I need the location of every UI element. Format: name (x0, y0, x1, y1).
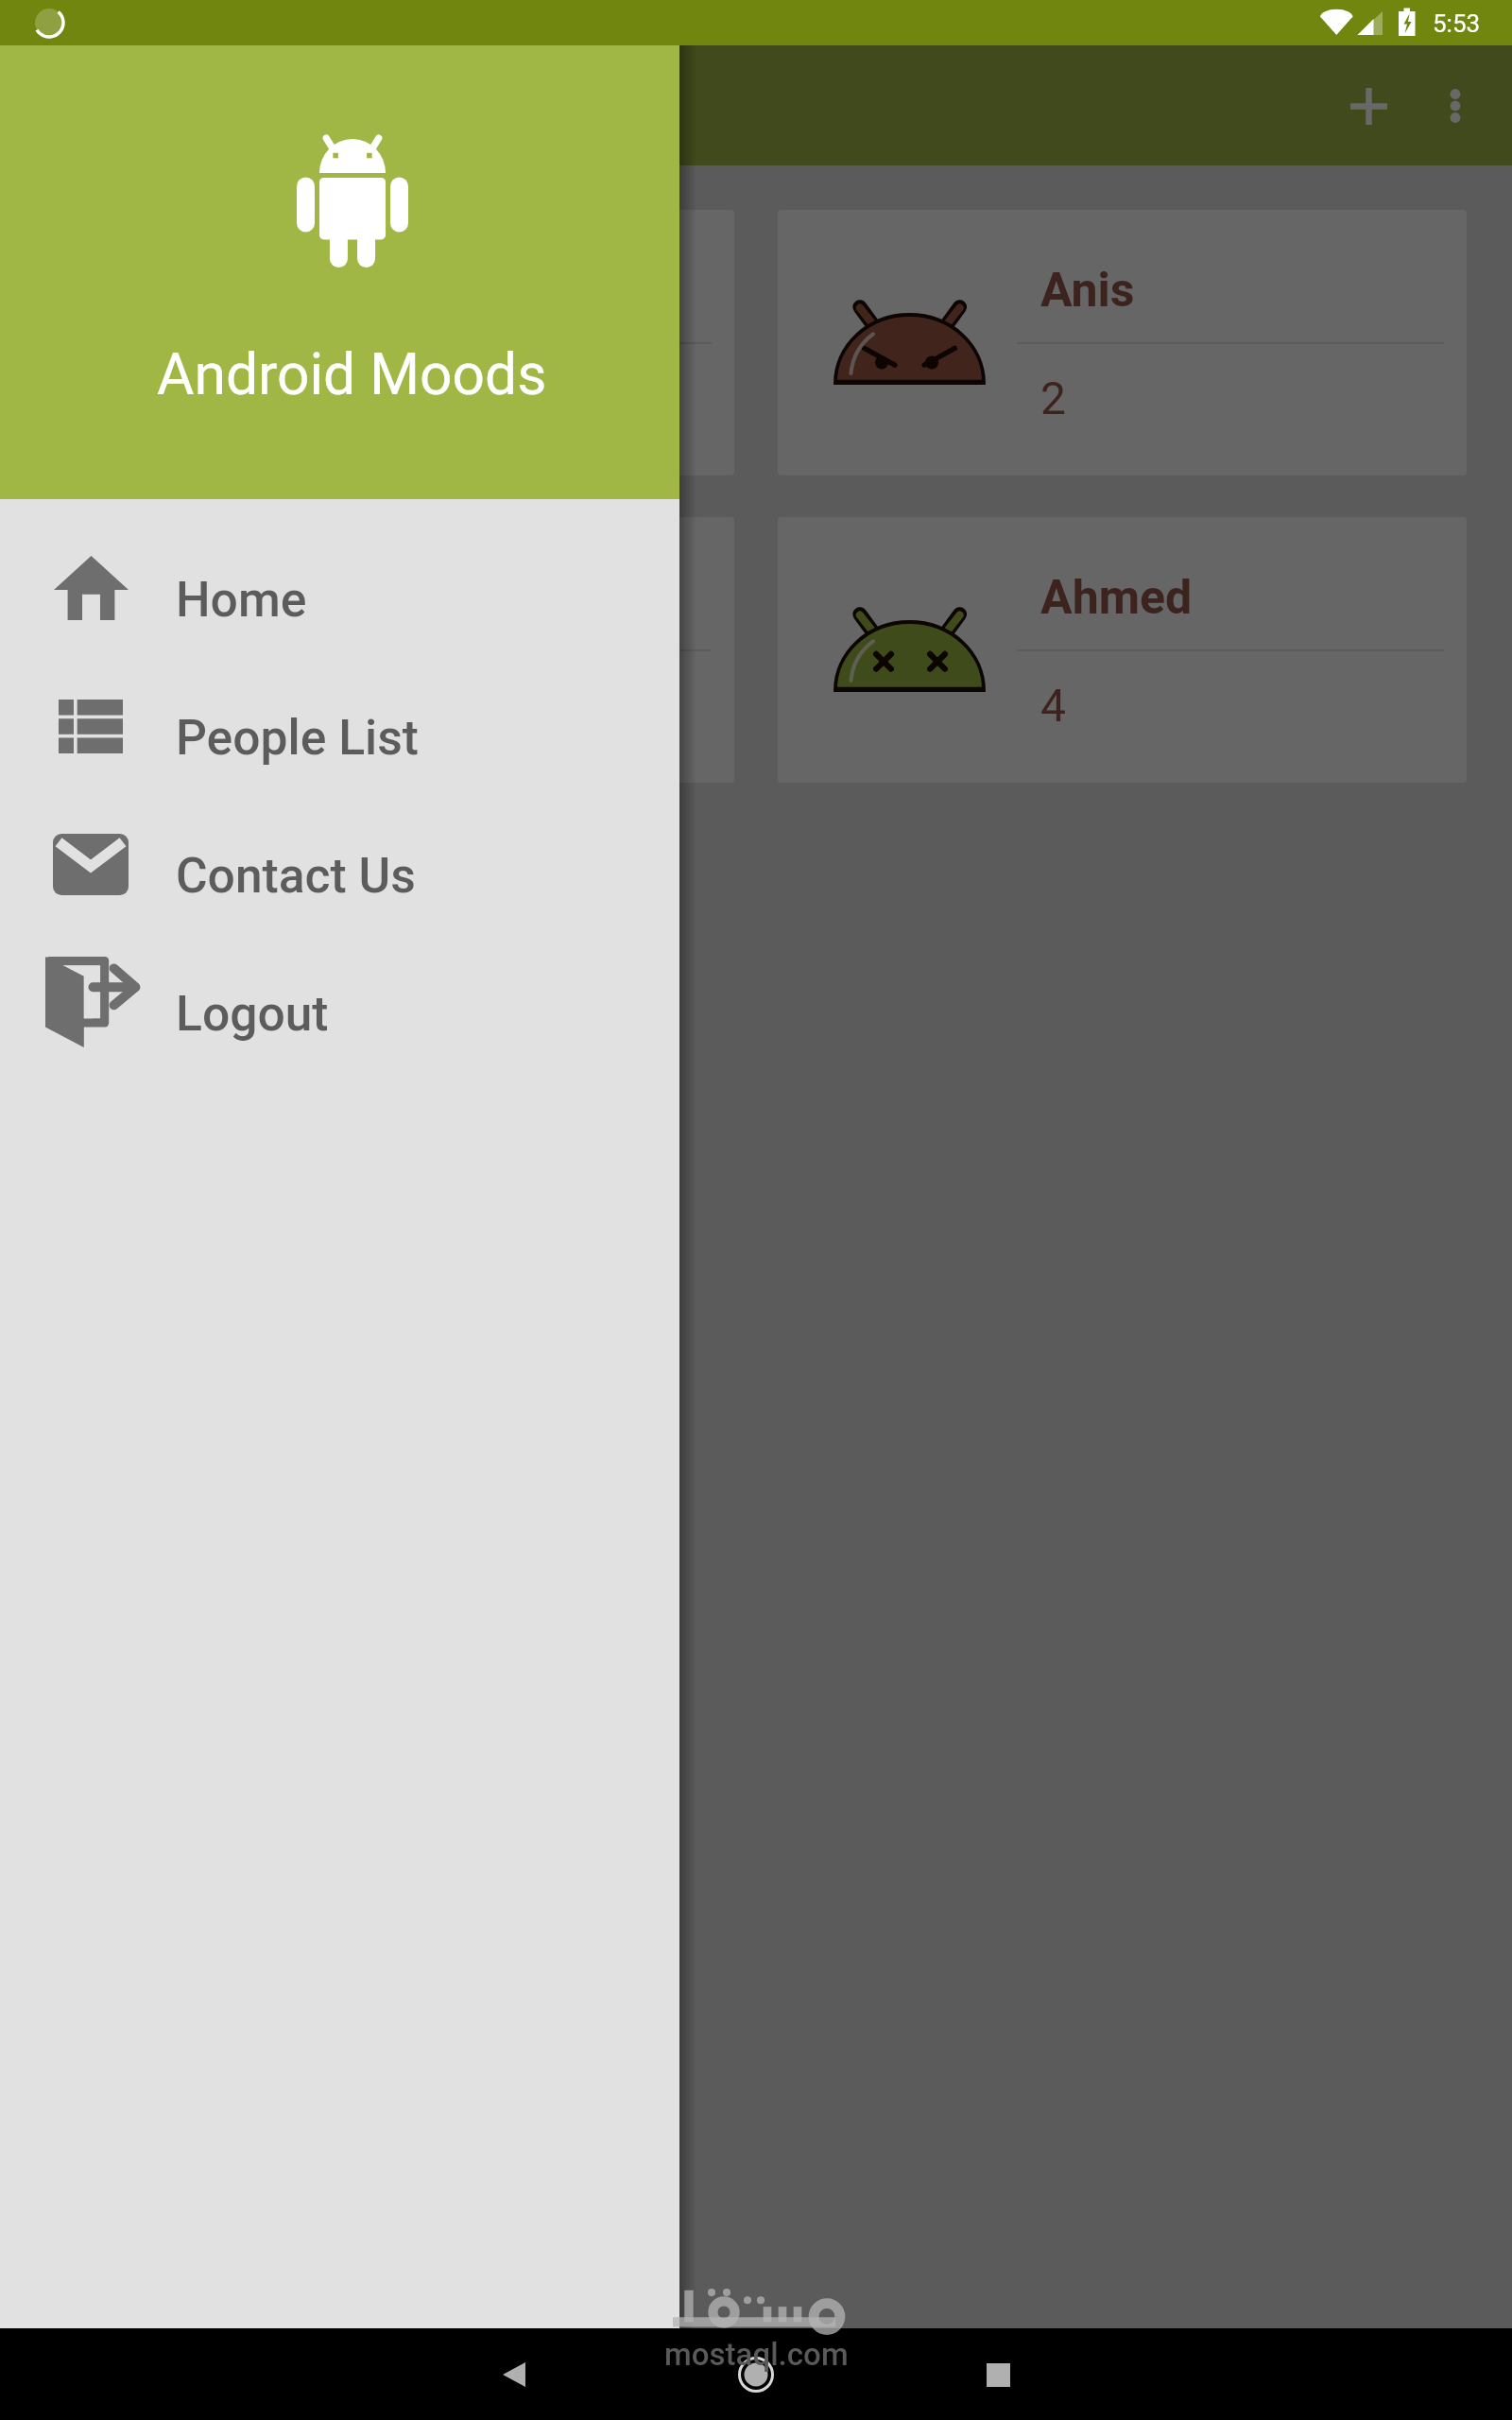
button[interactable]: Logout (0, 933, 679, 1071)
staticText: 3 (308, 679, 334, 732)
staticText: Ahmed (1040, 570, 1193, 626)
staticText: 5 (308, 372, 334, 424)
staticText: 2 (1040, 372, 1066, 424)
button[interactable]: Omar (45, 517, 734, 783)
staticText: mostaql.com (664, 2336, 849, 2373)
button[interactable]: Anis (778, 210, 1467, 475)
button[interactable]: Add (1317, 55, 1419, 157)
button[interactable]: Home (711, 2329, 801, 2420)
button[interactable]: Sara (45, 210, 734, 475)
staticText: Anis (1040, 263, 1135, 319)
button[interactable]: More options (1404, 55, 1506, 157)
staticText: Sara (308, 263, 404, 319)
staticText: Home (176, 571, 307, 628)
button[interactable]: Back (469, 2329, 559, 2420)
button[interactable]: People List (0, 657, 679, 795)
staticText: Android Moods (157, 341, 547, 408)
button[interactable]: Contact Us (0, 795, 679, 933)
staticText: 5:53 (1433, 9, 1481, 38)
staticText: 4 (1040, 679, 1066, 732)
button[interactable]: Recents (953, 2329, 1043, 2420)
button[interactable]: Ahmed (778, 517, 1467, 783)
button[interactable]: Home (0, 519, 679, 657)
staticText: People List (176, 709, 420, 766)
staticText: Contact Us (176, 847, 416, 904)
staticText: Logout (176, 985, 329, 1042)
